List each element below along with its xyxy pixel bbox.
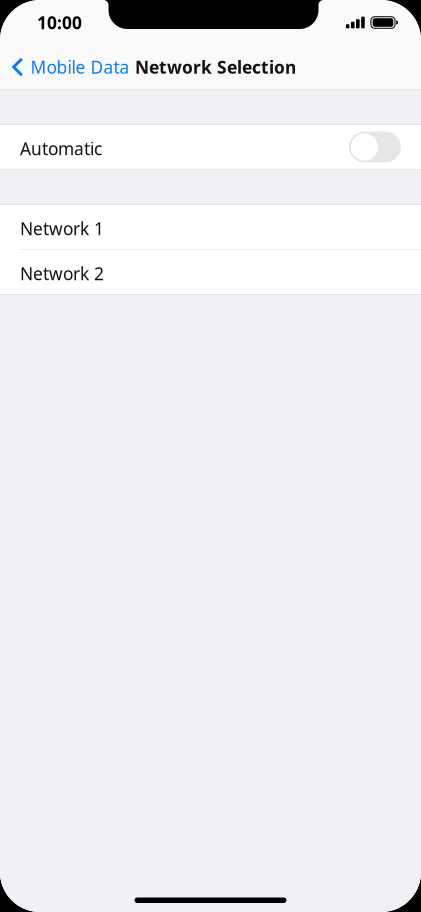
staticText: 10:00 [37, 11, 82, 34]
button[interactable]: Network 1 [0, 205, 421, 249]
staticText: Mobile Data [30, 55, 129, 79]
staticText: Network 2 [20, 262, 104, 285]
button[interactable]: Network 2 [0, 250, 421, 294]
staticText: Network Selection [135, 55, 296, 79]
button[interactable]: Automatic network selection, off [349, 131, 401, 162]
staticText: Automatic [20, 137, 102, 160]
button[interactable]: Mobile Data [0, 47, 137, 87]
staticText: Network 1 [20, 217, 104, 240]
